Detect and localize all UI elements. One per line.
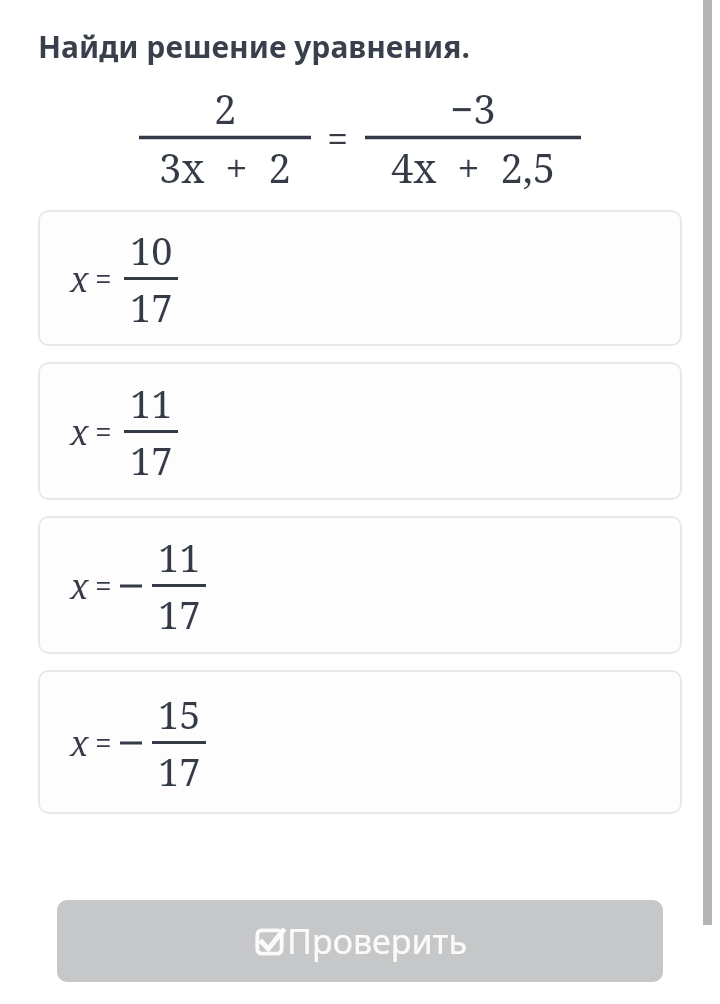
button[interactable]: x — [38, 516, 682, 654]
staticText: 11 — [130, 377, 173, 429]
staticText: 4x + 2,5 — [391, 140, 556, 194]
staticText: x — [70, 720, 89, 766]
staticText: = — [95, 565, 112, 606]
button[interactable]: Проверить — [57, 900, 663, 982]
staticText: 11 — [158, 531, 201, 583]
staticText: = — [95, 411, 112, 452]
staticText: 15 — [158, 688, 201, 740]
staticText: = — [327, 112, 349, 164]
staticText: x — [70, 563, 89, 609]
staticText: 17 — [158, 745, 201, 797]
staticText: Проверить — [287, 918, 467, 964]
staticText: 17 — [130, 434, 173, 486]
staticText: 3x + 2 — [159, 140, 291, 194]
button[interactable]: x — [38, 362, 682, 500]
staticText: Найди решение уравнения. — [38, 26, 470, 67]
button[interactable]: x — [38, 210, 682, 346]
staticText: 17 — [130, 281, 173, 333]
staticText: x — [70, 256, 89, 302]
staticText: = — [95, 722, 112, 763]
staticText: 10 — [130, 224, 173, 276]
staticText: = — [95, 258, 112, 299]
staticText: 2 — [214, 81, 237, 135]
staticText: 17 — [158, 588, 201, 640]
staticText: −3 — [450, 81, 496, 135]
staticText: x — [70, 409, 89, 455]
button[interactable]: x — [38, 670, 682, 814]
